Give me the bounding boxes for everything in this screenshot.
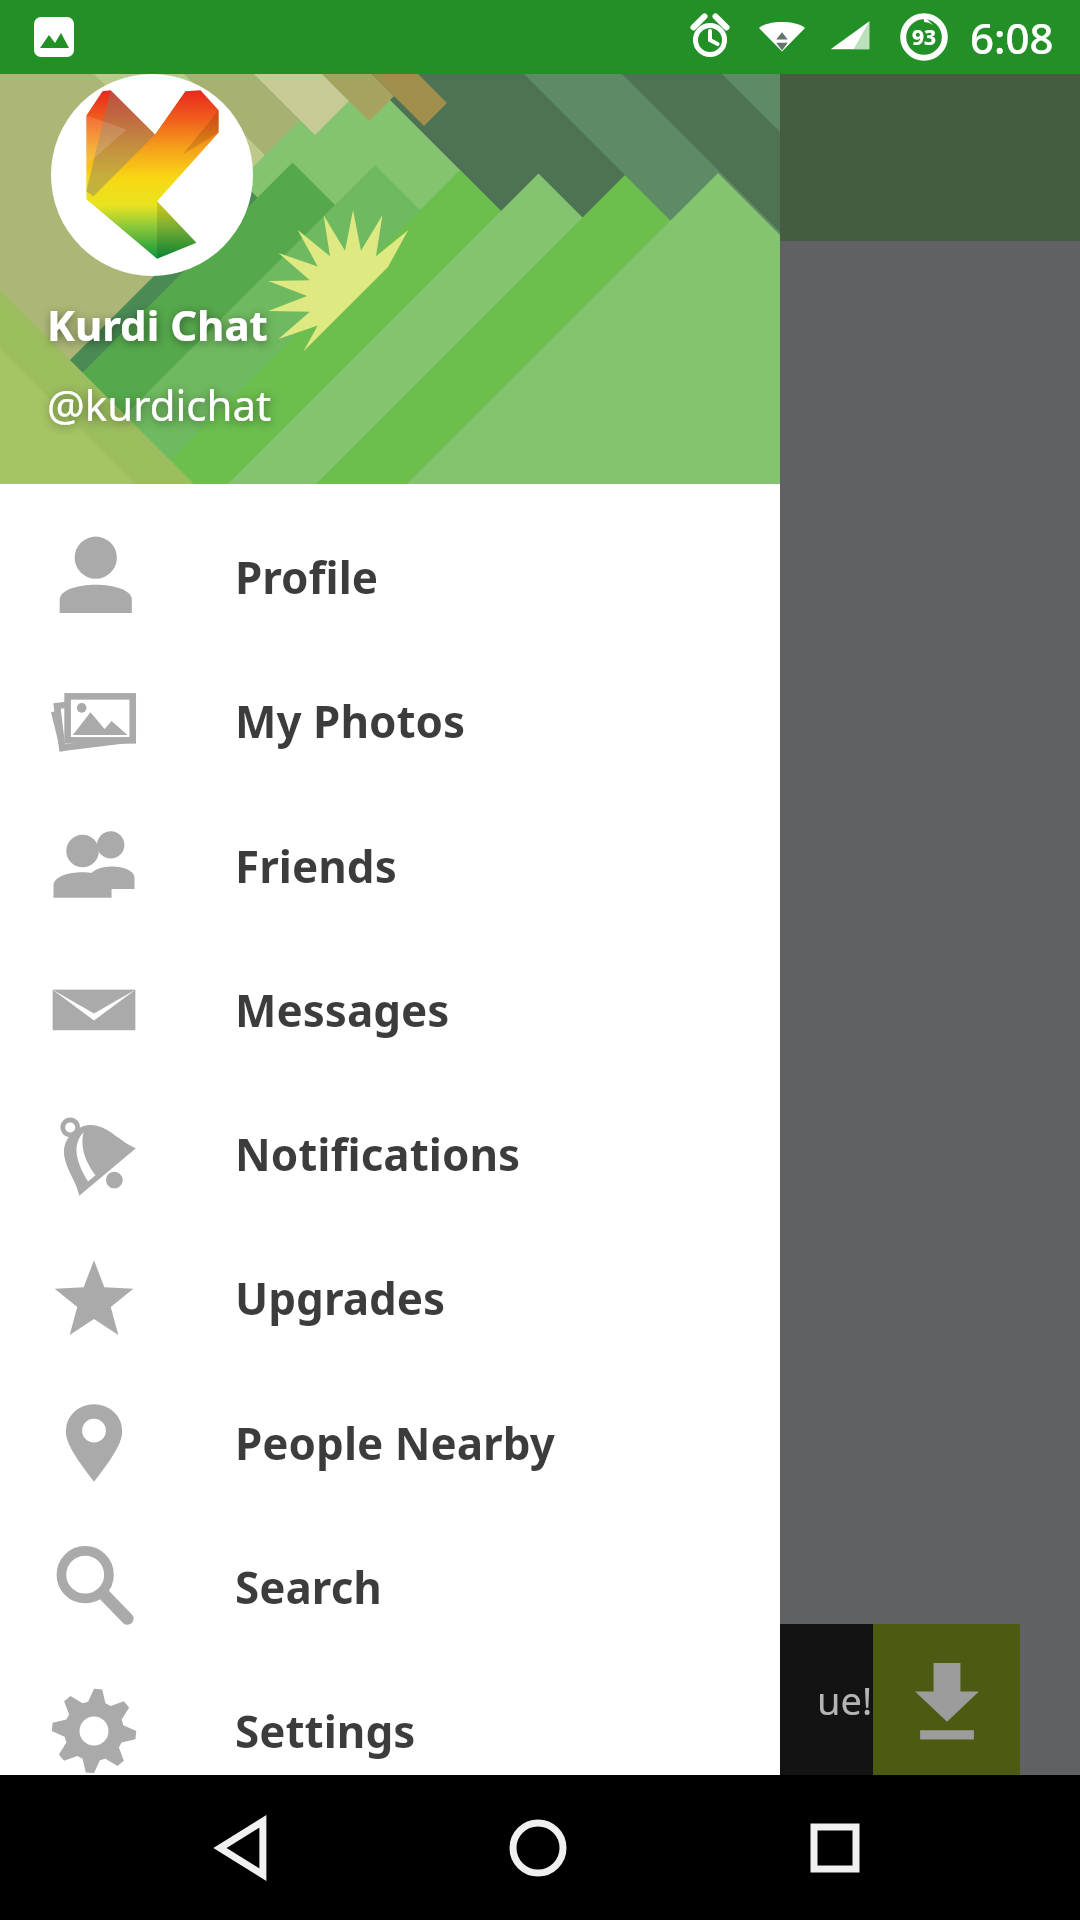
- button[interactable]: Recent apps: [745, 1775, 925, 1920]
- staticText: 93: [912, 23, 937, 52]
- button[interactable]: Download: [873, 1624, 1020, 1775]
- staticText: ue!: [817, 1674, 873, 1726]
- staticText: Messages: [235, 980, 450, 1040]
- button[interactable]: Upgrades: [0, 1226, 780, 1370]
- button[interactable]: Search: [0, 1515, 780, 1659]
- button[interactable]: Notifications: [0, 1082, 780, 1226]
- staticText: @kurdichat: [47, 376, 272, 433]
- button[interactable]: Settings: [0, 1659, 780, 1803]
- staticText: Search: [235, 1557, 382, 1617]
- staticText: Friends: [235, 836, 397, 896]
- button[interactable]: People Nearby: [0, 1371, 780, 1515]
- staticText: Upgrades: [235, 1268, 446, 1328]
- button[interactable]: Home: [448, 1775, 628, 1920]
- staticText: My Photos: [235, 691, 466, 751]
- staticText: Profile: [235, 547, 379, 607]
- button[interactable]: Back: [152, 1775, 332, 1920]
- staticText: 6:08: [970, 9, 1054, 66]
- staticText: Kurdi Chat: [47, 296, 268, 353]
- staticText: People Nearby: [235, 1413, 555, 1473]
- button[interactable]: Profile: [0, 505, 780, 649]
- button[interactable]: My Photos: [0, 649, 780, 793]
- button[interactable]: Friends: [0, 794, 780, 938]
- staticText: Settings: [235, 1701, 416, 1761]
- button[interactable]: Messages: [0, 938, 780, 1082]
- staticText: Notifications: [235, 1124, 521, 1184]
